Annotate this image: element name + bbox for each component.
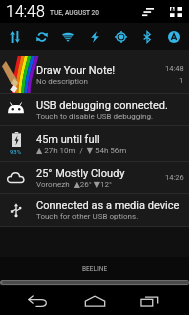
button[interactable]: USB debugging connected. (0, 94, 189, 125)
staticText: USB debugging connected. (36, 99, 168, 112)
button[interactable]: Battery saver (84, 26, 106, 48)
staticText: No description (36, 77, 89, 86)
staticText: 14:48 (6, 2, 45, 21)
button[interactable]: Bluetooth (136, 26, 158, 48)
button[interactable]: Airplane mode (163, 26, 185, 48)
staticText: 14:48 (165, 64, 184, 73)
staticText: TUE, AUGUST 20 (50, 9, 99, 17)
staticText: Draw Your Note! (36, 64, 116, 77)
button[interactable]: 25° Mostly Cloudy (0, 162, 189, 193)
staticText: BEELINE (82, 265, 108, 273)
staticText: Touch for other USB options. (36, 212, 139, 221)
button[interactable]: 93% (0, 126, 189, 161)
staticText: 25° Mostly Cloudy (36, 167, 125, 180)
button[interactable]: Notification settings (140, 1, 156, 22)
button[interactable]: Sync (31, 26, 53, 48)
button[interactable]: Connected as a media device (0, 194, 189, 226)
button[interactable]: Quick settings (168, 1, 184, 22)
staticText: Connected as a media device (36, 199, 180, 212)
staticText: 1 (179, 76, 184, 85)
button[interactable]: Recent apps (131, 288, 167, 314)
button[interactable]: Wi-Fi (57, 26, 79, 48)
button[interactable]: Mobile data (4, 26, 26, 48)
button[interactable]: Location (110, 26, 132, 48)
staticText: 93% (10, 148, 22, 155)
staticText: 45m until full (36, 133, 100, 146)
button[interactable]: Draw Your Note! (0, 56, 189, 93)
staticText: ▲ 27h 10m / ▼ 54h 56m (36, 146, 127, 155)
staticText: 14:26 (165, 173, 184, 182)
staticText: Touch to disable USB debugging. (36, 112, 154, 121)
staticText: Voronezh ▲26° ▼12° (36, 180, 112, 189)
button[interactable]: Home (77, 288, 113, 314)
button[interactable]: Back (20, 288, 56, 314)
